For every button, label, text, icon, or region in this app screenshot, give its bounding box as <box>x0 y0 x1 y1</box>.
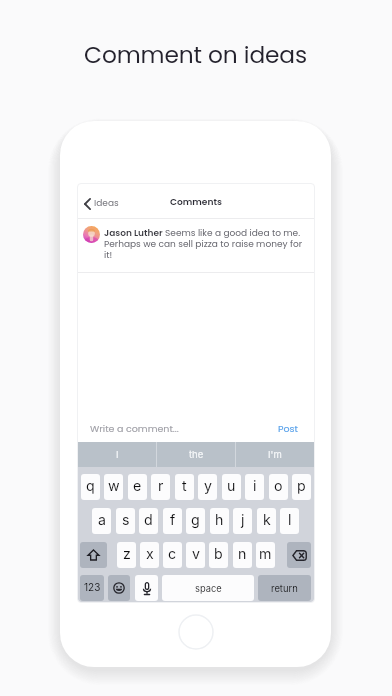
staticText: Post <box>278 422 298 435</box>
button[interactable]: l <box>280 508 299 534</box>
staticText: Jason Luther Seems like a good idea to m… <box>104 227 310 261</box>
button[interactable]: p <box>292 474 311 500</box>
staticText: c <box>168 545 177 562</box>
button[interactable]: m <box>256 542 275 568</box>
button[interactable]: return <box>258 575 311 601</box>
button[interactable]: I <box>78 442 156 467</box>
staticText: space <box>195 583 222 594</box>
staticText: e <box>133 477 142 494</box>
button[interactable]: b <box>209 542 228 568</box>
button[interactable]: Backspace <box>287 542 311 568</box>
button[interactable]: I'm <box>236 442 314 467</box>
staticText: n <box>238 545 247 562</box>
staticText: Ideas <box>94 197 119 210</box>
staticText: l <box>288 511 292 528</box>
staticText: v <box>192 545 200 562</box>
staticText: f <box>170 511 176 528</box>
button[interactable]: r <box>151 474 170 500</box>
button[interactable]: d <box>139 508 158 534</box>
staticText: y <box>204 477 212 494</box>
staticText: g <box>191 511 200 528</box>
button[interactable]: g <box>186 508 205 534</box>
staticText: Write a comment... <box>90 422 179 435</box>
staticText: q <box>86 477 95 494</box>
staticText: j <box>241 511 245 528</box>
staticText: 123 <box>84 581 101 593</box>
staticText: Comment on ideas <box>84 39 308 72</box>
button[interactable]: Post <box>270 414 306 442</box>
button[interactable]: i <box>245 474 264 500</box>
button[interactable]: h <box>210 508 229 534</box>
button[interactable]: a <box>92 508 111 534</box>
button[interactable]: Emoji <box>108 575 130 601</box>
staticText: r <box>158 477 164 494</box>
staticText: o <box>274 477 283 494</box>
staticText: t <box>182 477 187 494</box>
button[interactable]: Shift <box>80 542 107 568</box>
button[interactable]: space <box>162 575 254 601</box>
staticText: a <box>98 511 106 528</box>
button[interactable]: q <box>81 474 100 500</box>
staticText: p <box>297 477 306 494</box>
button[interactable]: y <box>198 474 217 500</box>
button[interactable]: n <box>233 542 252 568</box>
button[interactable]: j <box>233 508 252 534</box>
button[interactable]: Dictation <box>135 575 158 601</box>
button[interactable]: u <box>222 474 241 500</box>
staticText: return <box>271 583 298 594</box>
staticText: d <box>144 511 153 528</box>
button[interactable]: w <box>104 474 123 500</box>
button[interactable]: Ideas <box>80 193 123 214</box>
staticText: z <box>123 545 131 562</box>
staticText: x <box>146 545 154 562</box>
staticText: I <box>116 449 119 460</box>
button[interactable]: c <box>163 542 182 568</box>
staticText: w <box>108 477 120 494</box>
staticText: k <box>263 511 271 528</box>
button[interactable]: e <box>128 474 147 500</box>
staticText: m <box>259 545 272 562</box>
button[interactable]: k <box>257 508 276 534</box>
button[interactable]: v <box>186 542 205 568</box>
staticText: b <box>214 545 223 562</box>
staticText: h <box>215 511 224 528</box>
button[interactable]: 123 <box>80 575 104 601</box>
button[interactable]: the <box>157 442 235 467</box>
button[interactable]: t <box>175 474 194 500</box>
staticText: s <box>122 511 130 528</box>
staticText: u <box>227 477 236 494</box>
staticText: Comments <box>170 195 222 208</box>
button[interactable]: f <box>163 508 182 534</box>
button[interactable]: o <box>269 474 288 500</box>
staticText: I'm <box>268 449 282 460</box>
staticText: the <box>189 449 204 460</box>
staticText: i <box>253 477 257 494</box>
button[interactable]: z <box>117 542 136 568</box>
button[interactable]: x <box>140 542 159 568</box>
button[interactable]: s <box>116 508 135 534</box>
